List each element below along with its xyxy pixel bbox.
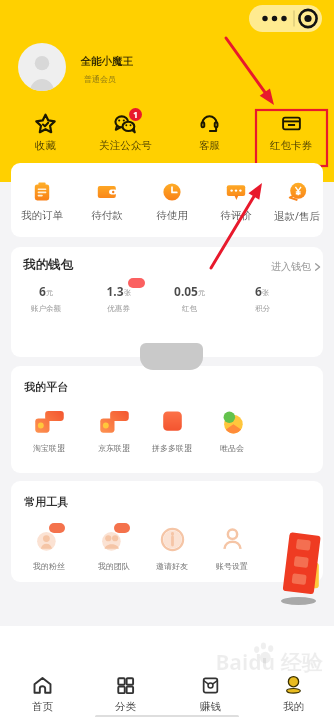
button[interactable]: 待使用 bbox=[141, 182, 203, 222]
staticText: 分类 bbox=[115, 700, 136, 713]
staticText: 淘宝联盟 bbox=[33, 443, 65, 453]
button[interactable]: Red packet promo bbox=[282, 532, 322, 596]
button[interactable]: 收藏 bbox=[7, 113, 83, 152]
button[interactable]: 我的粉丝 bbox=[21, 524, 77, 571]
button[interactable]: 待付款 bbox=[76, 182, 138, 222]
staticText: 收藏 bbox=[35, 139, 56, 152]
button[interactable]: 赚钱 bbox=[174, 676, 246, 713]
button[interactable]: 分类 bbox=[89, 676, 161, 713]
staticText: 张 bbox=[262, 288, 269, 297]
staticText: 账号设置 bbox=[216, 561, 248, 571]
staticText: 我的粉丝 bbox=[33, 561, 65, 571]
button[interactable]: 拼多多联盟 bbox=[144, 406, 200, 453]
button[interactable]: 我的订单 bbox=[11, 182, 73, 222]
staticText: 0.05 bbox=[174, 283, 198, 298]
button[interactable]: 6 bbox=[14, 283, 78, 313]
staticText: 元 bbox=[46, 288, 53, 297]
button[interactable]: 红包卡券 bbox=[253, 113, 329, 152]
button[interactable]: 唯品会 bbox=[204, 406, 260, 453]
staticText: 红包 bbox=[182, 304, 197, 313]
staticText: 我的 bbox=[283, 700, 304, 713]
staticText: 我的平台 bbox=[24, 380, 68, 394]
button[interactable]: 1.3 bbox=[86, 283, 150, 313]
button[interactable]: 待评价 bbox=[205, 182, 267, 222]
staticText: 6 bbox=[39, 283, 46, 298]
staticText: 待付款 bbox=[91, 209, 123, 222]
staticText: 账户余额 bbox=[31, 304, 61, 313]
button[interactable]: 6 bbox=[230, 283, 294, 313]
staticText: 常用工具 bbox=[24, 495, 68, 509]
button[interactable]: 邀请好友 bbox=[144, 524, 200, 571]
staticText: 邀请好友 bbox=[156, 561, 188, 571]
button[interactable]: 首页 bbox=[6, 676, 78, 713]
staticText: 普通会员 bbox=[84, 74, 116, 84]
staticText: 关注公众号 bbox=[99, 139, 152, 152]
staticText: 张 bbox=[124, 288, 131, 297]
staticText: 赚钱 bbox=[200, 700, 221, 713]
staticText: Baidu 经验 bbox=[215, 648, 323, 677]
staticText: 6 bbox=[255, 283, 262, 298]
button[interactable]: 进入钱包 bbox=[271, 260, 322, 273]
staticText: 元 bbox=[198, 288, 205, 297]
button[interactable]: 客服 bbox=[171, 113, 247, 152]
staticText: 积分 bbox=[255, 304, 270, 313]
button[interactable]: Avatar bbox=[18, 43, 66, 91]
button[interactable]: 退款/售后 bbox=[266, 182, 323, 223]
staticText: 退款/售后 bbox=[274, 209, 320, 223]
button[interactable]: More options bbox=[249, 5, 322, 32]
staticText: 我的订单 bbox=[21, 209, 63, 222]
staticText: 拼多多联盟 bbox=[152, 443, 192, 453]
button[interactable]: 我的团队 bbox=[86, 524, 142, 571]
staticText: 优惠券 bbox=[107, 304, 130, 313]
staticText: 我的团队 bbox=[98, 561, 130, 571]
button[interactable]: 淘宝联盟 bbox=[21, 406, 77, 453]
staticText: 唯品会 bbox=[220, 443, 244, 453]
staticText: 进入钱包 bbox=[271, 260, 311, 273]
button[interactable]: 1 bbox=[87, 113, 163, 152]
staticText: 待使用 bbox=[156, 209, 188, 222]
staticText: 待评价 bbox=[220, 209, 252, 222]
staticText: 我的钱包 bbox=[23, 257, 73, 273]
button[interactable]: 我的 bbox=[257, 676, 329, 713]
button[interactable]: 账号设置 bbox=[204, 524, 260, 571]
staticText: 红包卡券 bbox=[270, 139, 312, 152]
staticText: 全能小魔王 bbox=[80, 55, 133, 68]
button[interactable]: 0.05 bbox=[157, 283, 221, 313]
staticText: 1.3 bbox=[106, 283, 124, 298]
staticText: 首页 bbox=[32, 700, 53, 713]
staticText: 1 bbox=[133, 109, 138, 120]
button[interactable]: 京东联盟 bbox=[86, 406, 142, 453]
staticText: 京东联盟 bbox=[98, 443, 130, 453]
staticText: 客服 bbox=[199, 139, 220, 152]
